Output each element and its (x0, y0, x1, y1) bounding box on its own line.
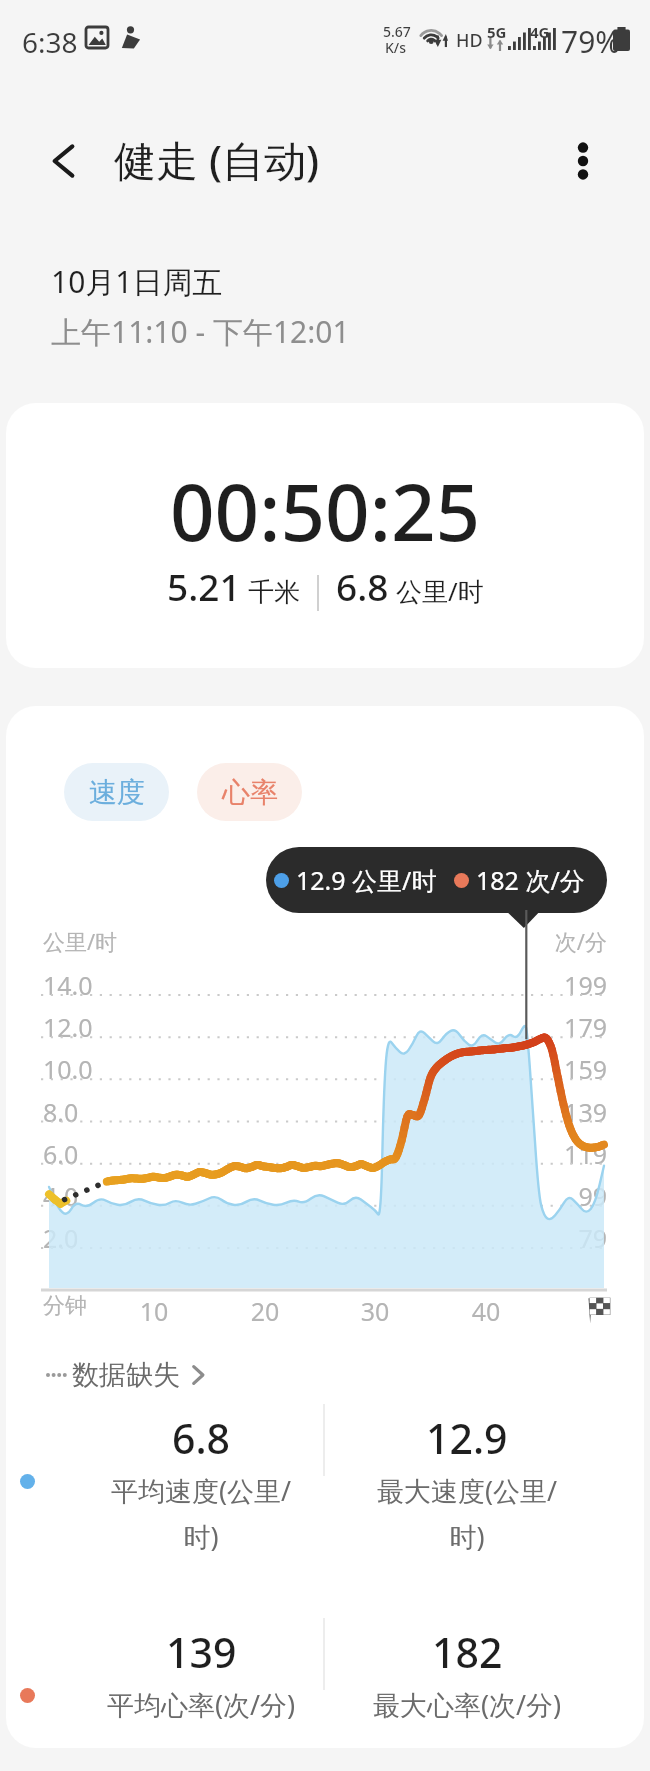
staticText: 平均速度(公里/时) (102, 1472, 300, 1555)
button[interactable]: 速度 (64, 763, 169, 821)
staticText: 10月1日周五 (51, 261, 223, 302)
staticText: 10.0 (43, 1052, 93, 1086)
staticText: 12.9 (426, 1410, 508, 1466)
staticText: 6.0 (43, 1137, 79, 1171)
staticText: 40 (456, 1294, 516, 1328)
staticText: 182 (432, 1624, 503, 1680)
staticText: 健走 (自动) (114, 131, 320, 188)
staticText: 12.9 公里/时 (296, 863, 437, 897)
staticText: 12.0 (43, 1010, 93, 1044)
staticText: 心率 (222, 775, 278, 810)
staticText: 10 (124, 1294, 184, 1328)
staticText: 99 (506, 1179, 607, 1213)
staticText: 179 (506, 1010, 607, 1044)
staticText: 6.8 (172, 1410, 231, 1466)
button[interactable]: More options (559, 137, 607, 185)
staticText: 00:50:25 (170, 458, 481, 564)
staticText: 5.67 (383, 22, 411, 41)
staticText: K/s (385, 38, 407, 57)
staticText: 速度 (89, 775, 145, 810)
staticText: 5G (487, 22, 507, 42)
staticText: 8.0 (43, 1095, 79, 1129)
staticText: 2.0 (43, 1221, 79, 1255)
staticText: 139 (166, 1624, 237, 1680)
staticText: 30 (345, 1294, 405, 1328)
staticText: 4.0 (43, 1179, 79, 1213)
staticText: HD (456, 28, 483, 53)
staticText: 最大速度(公里/时) (368, 1472, 566, 1555)
button[interactable]: 数据缺失 (30, 1358, 207, 1392)
staticText: 20 (235, 1294, 295, 1328)
button[interactable]: 6.8 (70, 1410, 332, 1549)
staticText: 139 (506, 1095, 607, 1129)
staticText: 5.21 (167, 561, 241, 611)
staticText: 分钟 (43, 1292, 87, 1320)
button[interactable]: 139 (70, 1624, 332, 1717)
button[interactable]: Back (38, 135, 90, 187)
staticText: 79% (561, 21, 621, 62)
staticText: 182 次/分 (476, 863, 585, 897)
staticText: 6:38 (22, 23, 78, 61)
staticText: 159 (506, 1052, 607, 1086)
staticText: 14.0 (43, 968, 93, 1002)
staticText: 最大心率(次/分) (368, 1686, 566, 1723)
staticText: 79 (506, 1221, 607, 1255)
button[interactable]: 12.9 (336, 1410, 598, 1549)
staticText: 公里/时 (396, 573, 484, 609)
button[interactable]: 182 (336, 1624, 598, 1717)
staticText: 119 (506, 1137, 607, 1171)
staticText: 公里/时 (43, 926, 118, 956)
staticText: 4G (530, 22, 550, 42)
staticText: 平均心率(次/分) (102, 1686, 300, 1723)
staticText: 千米 (248, 576, 300, 609)
staticText: 6.8 (336, 561, 389, 611)
button[interactable]: 00:50:25 (6, 403, 644, 668)
staticText: 199 (506, 968, 607, 1002)
button[interactable]: 心率 (197, 763, 302, 821)
staticText: 上午11:10 - 下午12:01 (51, 311, 350, 352)
staticText: 数据缺失 (72, 1358, 180, 1392)
staticText: 次/分 (506, 926, 607, 956)
